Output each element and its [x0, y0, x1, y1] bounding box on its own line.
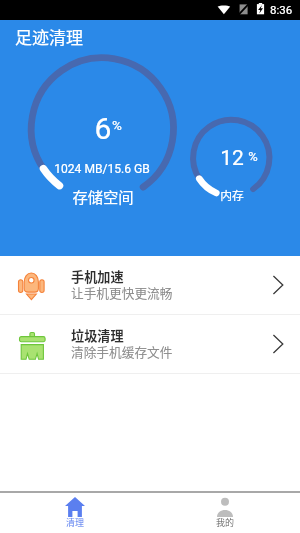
staticText: 1024 MB/15.6 GB — [22, 162, 182, 176]
staticText: 我的 — [216, 516, 235, 529]
staticText: 清理 — [66, 516, 85, 529]
staticText: 让手机更快更流畅 — [71, 283, 173, 301]
staticText: 内存 — [152, 186, 300, 203]
staticText: 垃圾清理 — [71, 326, 124, 345]
staticText: 8:36 — [270, 3, 293, 16]
staticText: 存储空间 — [23, 185, 183, 207]
staticText: 足迹清理 — [15, 24, 83, 49]
button[interactable]: 手机加速 — [0, 256, 300, 314]
staticText: 12 — [152, 146, 300, 171]
button[interactable]: 我的 — [150, 493, 300, 533]
button[interactable]: 清理 — [0, 493, 150, 533]
staticText: % — [173, 149, 300, 164]
staticText: 手机加速 — [71, 267, 124, 286]
button[interactable]: 垃圾清理 — [0, 315, 300, 373]
staticText: 6 — [23, 111, 183, 146]
staticText: 清除手机缓存文件 — [71, 342, 173, 360]
staticText: % — [37, 117, 197, 133]
